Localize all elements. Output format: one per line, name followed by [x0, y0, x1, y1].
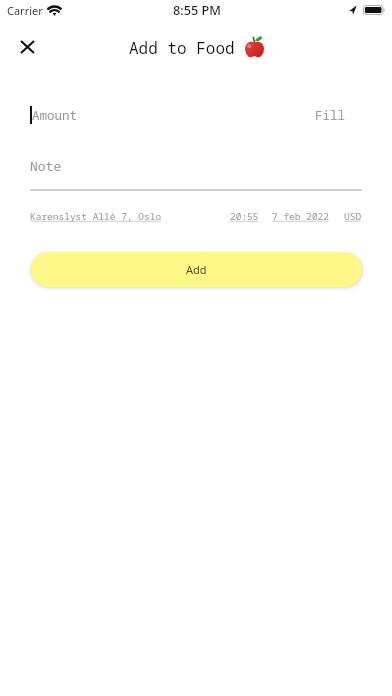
button[interactable]: Note [30, 157, 362, 191]
button[interactable]: 20:55 [230, 210, 259, 223]
staticText: Add [186, 262, 207, 277]
staticText: Amount [32, 107, 78, 124]
staticText: Note [30, 157, 62, 175]
staticText: Add to Food [129, 37, 235, 59]
button[interactable]: USD [344, 210, 362, 223]
button[interactable]: Amount [30, 105, 303, 125]
staticText: 8:55 PM [173, 1, 221, 18]
staticText: Carrier [7, 3, 43, 18]
button[interactable]: Add [30, 252, 362, 287]
button[interactable]: Close [7, 27, 47, 67]
staticText: USD [344, 210, 362, 223]
staticText: 7 feb 2022 [272, 210, 330, 223]
staticText: Karenslyst Allé 7, Oslo [30, 210, 162, 223]
staticText: Fill [315, 107, 346, 124]
button[interactable]: Karenslyst Allé 7, Oslo [30, 210, 162, 223]
staticText: 20:55 [230, 210, 259, 223]
button[interactable]: Fill [303, 105, 392, 125]
button[interactable]: 7 feb 2022 [272, 210, 330, 223]
